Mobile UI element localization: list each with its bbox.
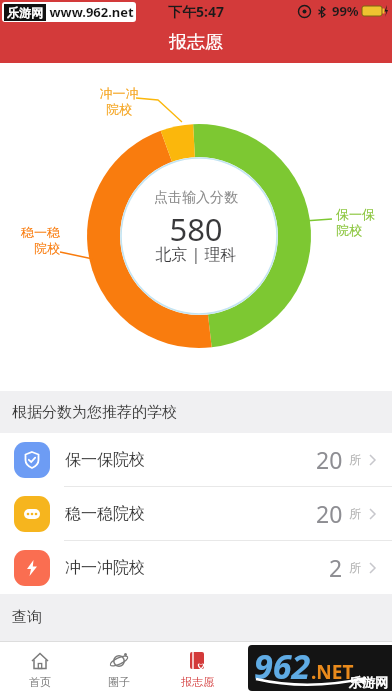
button[interactable]: 首页 — [0, 642, 79, 696]
staticText: 保一保 院校 — [336, 206, 380, 239]
staticText: 20 — [316, 444, 343, 475]
staticText: 保一保院校 — [65, 450, 145, 470]
staticText: 报志愿 — [169, 31, 223, 54]
button[interactable]: 我的 — [314, 642, 392, 696]
staticText: 99% — [332, 2, 359, 20]
staticText: 资讯 — [264, 675, 286, 689]
staticText: www.962.net — [46, 3, 134, 21]
staticText: 稳一稳 院校 — [16, 224, 60, 257]
staticText: 根据分数为您推荐的学校 — [12, 403, 177, 422]
staticText: 乐游网 — [349, 674, 388, 690]
staticText: 所 — [349, 452, 361, 467]
staticText: 20 — [316, 498, 343, 529]
button[interactable]: 冲一冲院校 — [0, 541, 392, 594]
staticText: 圈子 — [108, 675, 130, 689]
staticText: 所 — [349, 560, 361, 575]
staticText: 乐游网 — [7, 5, 43, 20]
staticText: 点击输入分数 — [0, 189, 392, 207]
staticText: 冲一冲 院校 — [98, 85, 140, 118]
staticText: 稳一稳院校 — [65, 504, 145, 524]
staticText: .NET — [311, 659, 354, 685]
staticText: 查询 — [12, 608, 42, 627]
button[interactable]: 圈子 — [79, 642, 158, 696]
button[interactable]: 保一保院校 — [0, 433, 392, 486]
button[interactable]: 资讯 — [236, 642, 314, 696]
staticText: 962 — [254, 645, 311, 689]
staticText: 所 — [349, 506, 361, 521]
staticText: 我的 — [342, 675, 364, 689]
staticText: 报志愿 — [181, 675, 214, 689]
staticText: 2 — [329, 552, 343, 583]
staticText: 580 — [0, 208, 392, 250]
staticText: 下午5:47 — [168, 2, 224, 21]
staticText: 冲一冲院校 — [65, 558, 145, 578]
button[interactable]: 报志愿 — [158, 642, 236, 696]
button[interactable]: 稳一稳院校 — [0, 487, 392, 540]
staticText: 首页 — [29, 675, 51, 689]
staticText: 北京 | 理科 — [0, 243, 392, 265]
